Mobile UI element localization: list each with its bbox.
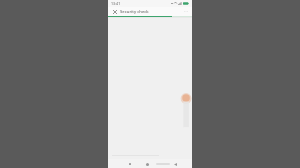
- button[interactable]: Back: [172, 161, 179, 168]
- button[interactable]: More options: [182, 8, 189, 15]
- button[interactable]: Home: [143, 160, 151, 168]
- button[interactable]: Recent apps: [126, 160, 134, 168]
- button[interactable]: Close: [111, 8, 118, 15]
- staticText: Security check: [120, 9, 182, 15]
- staticText: 13:41: [111, 1, 121, 6]
